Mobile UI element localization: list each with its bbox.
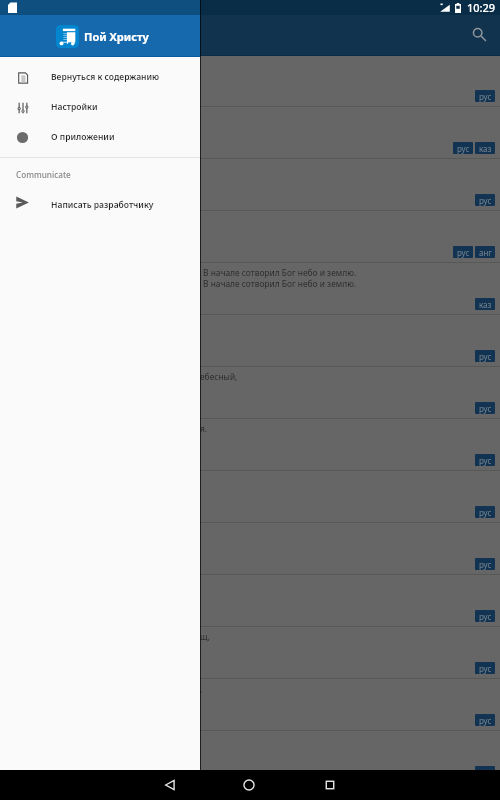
button[interactable]: Home — [233, 770, 265, 800]
button[interactable]: рус — [0, 315, 500, 367]
staticText: щ, — [200, 631, 210, 642]
button[interactable]: рус — [0, 471, 500, 523]
staticText: рус — [479, 715, 492, 726]
staticText: О приложении — [51, 131, 115, 143]
button[interactable]: рус — [0, 159, 500, 211]
staticText: рус — [479, 507, 492, 518]
button[interactable]: рус — [0, 107, 500, 159]
staticText: Communicate — [16, 169, 71, 180]
button[interactable]: О приложении — [0, 122, 200, 152]
staticText: Пой Христу — [84, 29, 149, 44]
staticText: рус — [479, 91, 492, 102]
staticText: рус — [479, 455, 492, 466]
staticText: В начале сотворил Бог небо и землю. — [203, 267, 357, 278]
staticText: В начале сотворил Бог небо и землю. — [203, 278, 357, 289]
staticText: Вернуться к содержанию — [51, 71, 160, 83]
button[interactable]: рус — [0, 731, 500, 770]
staticText: рус — [479, 403, 492, 414]
button[interactable]: , — [0, 679, 500, 731]
staticText: каз — [479, 143, 492, 154]
button[interactable]: рус — [0, 56, 500, 107]
button[interactable]: Back — [154, 770, 186, 800]
staticText: ебесный, — [200, 371, 238, 382]
staticText: рус — [479, 611, 492, 622]
button[interactable]: я. — [0, 419, 500, 471]
staticText: рус — [479, 195, 492, 206]
button[interactable]: Настройки — [0, 92, 200, 122]
button[interactable]: рус — [0, 523, 500, 575]
staticText: , — [200, 683, 203, 694]
staticText: 10:29 — [467, 0, 496, 15]
staticText: анг — [479, 247, 492, 258]
staticText: Написать разработчику — [51, 199, 154, 211]
button[interactable]: В начале сотворил Бог небо и землю. — [0, 263, 500, 315]
button[interactable]: ебесный, — [0, 367, 500, 419]
button[interactable]: Search — [462, 17, 496, 51]
button[interactable]: Recent apps — [314, 770, 346, 800]
staticText: я. — [200, 423, 208, 434]
staticText: рус — [479, 663, 492, 674]
staticText: рус — [479, 559, 492, 570]
button[interactable]: Написать разработчику — [0, 190, 200, 220]
staticText: рус — [479, 351, 492, 362]
button[interactable]: щ, — [0, 627, 500, 679]
staticText: рус — [457, 143, 470, 154]
button[interactable]: рус — [0, 575, 500, 627]
button[interactable]: Вернуться к содержанию — [0, 62, 200, 92]
staticText: рус — [457, 247, 470, 258]
button[interactable]: рус — [0, 211, 500, 263]
staticText: Настройки — [51, 101, 98, 113]
staticText: каз — [479, 299, 492, 310]
